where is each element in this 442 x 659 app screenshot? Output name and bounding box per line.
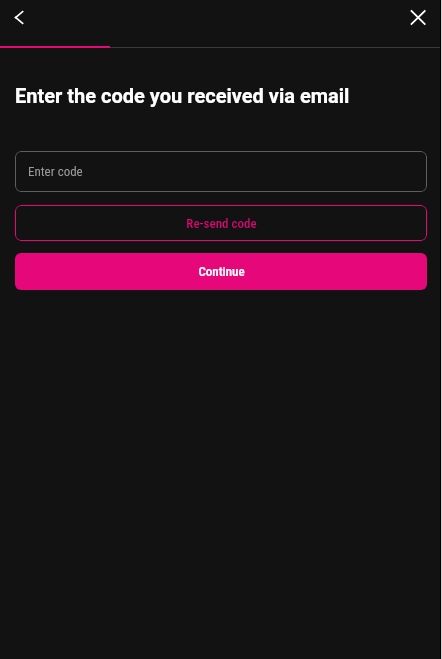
staticText: Enter code: [28, 164, 83, 179]
button[interactable]: Enter code: [15, 151, 427, 192]
staticText: Enter the code you received via email: [15, 84, 350, 107]
button[interactable]: Re-send code: [15, 205, 427, 241]
button[interactable]: Close: [398, 0, 442, 36]
button[interactable]: Continue: [15, 253, 427, 290]
staticText: Continue: [198, 264, 245, 279]
button[interactable]: Back: [0, 0, 40, 36]
staticText: Re-send code: [186, 216, 257, 231]
